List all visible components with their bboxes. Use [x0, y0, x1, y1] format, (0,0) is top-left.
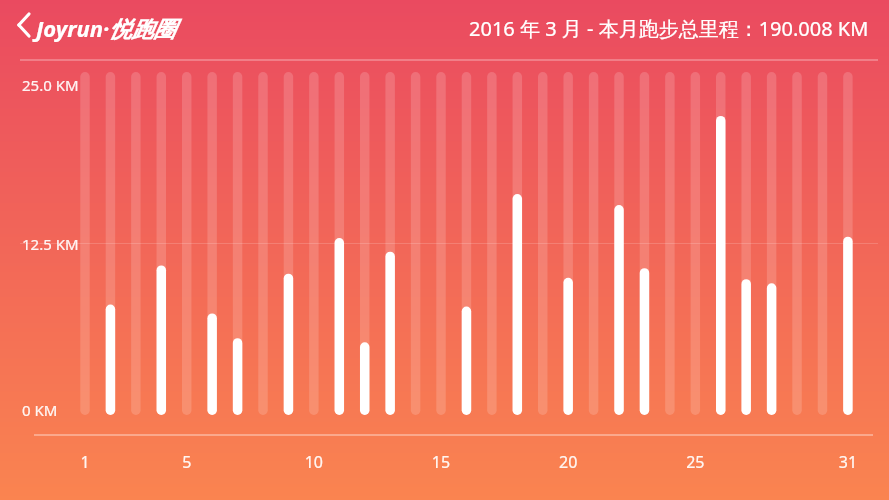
button[interactable]: Back [0, 0, 44, 50]
